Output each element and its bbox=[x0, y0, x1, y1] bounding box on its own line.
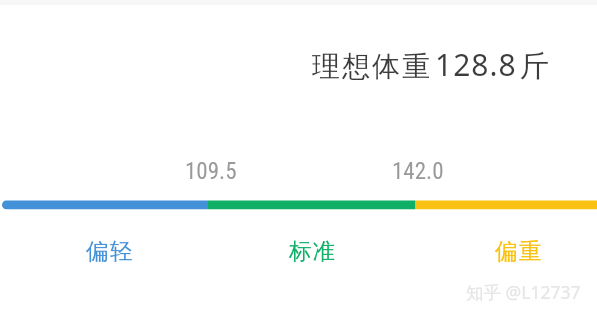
staticText: 知乎 @L12737 bbox=[466, 280, 581, 304]
staticText: 142.0 bbox=[392, 158, 444, 185]
staticText: 偏轻 bbox=[86, 237, 134, 265]
staticText: 偏重 bbox=[495, 237, 543, 265]
staticText: 109.5 bbox=[185, 158, 237, 185]
button[interactable]: 理想体重128.8斤 bbox=[0, 6, 597, 316]
staticText: 理想体重128.8斤 bbox=[312, 44, 552, 85]
staticText: 标准 bbox=[289, 237, 337, 265]
